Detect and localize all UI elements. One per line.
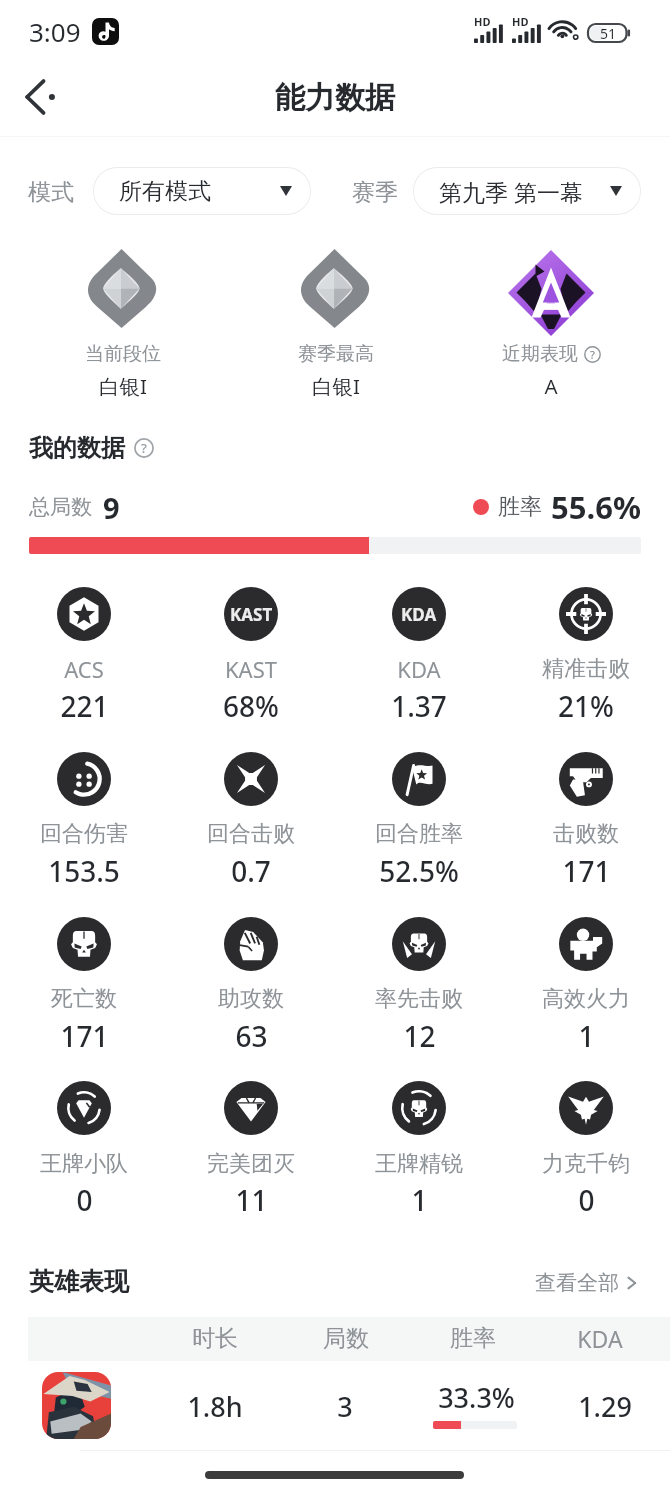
staticText: ACS (64, 654, 104, 684)
staticText: 查看全部 (535, 1270, 619, 1296)
staticText: 近期表现 (502, 342, 578, 366)
staticText: 高效火力 (542, 985, 630, 1013)
staticText: 55.6% (551, 486, 641, 528)
staticText: 1.29 (578, 1388, 632, 1425)
staticText: 153.5 (48, 852, 120, 890)
staticText: 回合击败 (207, 820, 295, 848)
staticText: 胜率 (450, 1324, 496, 1353)
staticText: 时长 (192, 1324, 238, 1353)
staticText: 当前段位 (85, 342, 161, 366)
button[interactable] (168, 907, 336, 1037)
staticText: 51 (600, 24, 617, 42)
button[interactable]: 第九季 第一幕 (413, 167, 641, 215)
staticText: 1.8h (187, 1388, 243, 1425)
staticText: 率先击败 (375, 985, 463, 1013)
staticText: KAST (225, 654, 277, 684)
staticText: 9 (103, 488, 120, 527)
staticText: ? (141, 439, 147, 457)
staticText: 11 (235, 1181, 268, 1219)
button[interactable] (335, 907, 503, 1037)
staticText: 总局数 (29, 494, 92, 520)
button[interactable] (0, 742, 168, 872)
button[interactable]: Back (12, 68, 70, 126)
staticText: 英雄表现 (29, 1266, 129, 1297)
staticText: 221 (60, 687, 109, 725)
staticText: 回合伤害 (40, 820, 128, 848)
button[interactable] (168, 742, 336, 872)
staticText: 死亡数 (51, 985, 117, 1013)
staticText: 精准击败 (542, 655, 630, 683)
staticText: 1 (578, 1017, 595, 1055)
staticText: 白银I (99, 372, 147, 400)
staticText: 0 (76, 1181, 93, 1219)
button[interactable]: 查看全部 (535, 1270, 641, 1296)
button[interactable] (168, 577, 336, 707)
staticText: 赛季最高 (298, 342, 374, 366)
staticText: 白银I (312, 372, 360, 400)
staticText: HD (512, 14, 529, 29)
staticText: KDA (397, 654, 441, 684)
button[interactable] (335, 742, 503, 872)
staticText: 能力数据 (275, 79, 395, 117)
staticText: 171 (60, 1017, 109, 1055)
staticText: 171 (562, 852, 611, 890)
button[interactable] (0, 1071, 168, 1201)
staticText: 胜率 (498, 493, 542, 521)
staticText: 21% (558, 687, 614, 725)
staticText: 12 (403, 1017, 436, 1055)
staticText: KDA (577, 1323, 623, 1354)
button[interactable] (0, 577, 168, 707)
button[interactable] (168, 1071, 336, 1201)
staticText: 3 (337, 1388, 353, 1425)
button[interactable] (503, 577, 670, 707)
staticText: 模式 (28, 178, 74, 207)
staticText: 68% (223, 687, 279, 725)
button[interactable] (335, 577, 503, 707)
staticText: 0 (578, 1181, 595, 1219)
button[interactable] (28, 1363, 670, 1451)
staticText: 赛季 (352, 178, 398, 207)
staticText: 52.5% (379, 852, 459, 890)
button[interactable] (0, 907, 168, 1037)
staticText: 力克千钧 (542, 1150, 630, 1178)
staticText: KAST (230, 603, 273, 626)
staticText: 助攻数 (218, 985, 284, 1013)
button[interactable] (335, 1071, 503, 1201)
staticText: 王牌小队 (40, 1150, 128, 1178)
staticText: 王牌精锐 (375, 1150, 463, 1178)
staticText: 1.37 (391, 687, 447, 725)
staticText: HD (474, 14, 491, 29)
staticText: 0.7 (231, 852, 271, 890)
staticText: 所有模式 (119, 177, 280, 206)
button[interactable] (503, 742, 670, 872)
staticText: A (544, 372, 558, 400)
staticText: 第九季 第一幕 (439, 176, 610, 207)
button[interactable]: 所有模式 (93, 167, 311, 215)
staticText: 回合胜率 (375, 820, 463, 848)
button[interactable] (503, 1071, 670, 1201)
staticText: ? (590, 347, 595, 362)
staticText: 完美团灭 (207, 1150, 295, 1178)
staticText: KDA (401, 603, 437, 626)
staticText: 击败数 (553, 820, 619, 848)
staticText: 3:09 (29, 14, 81, 49)
staticText: 局数 (323, 1324, 369, 1353)
staticText: 我的数据 (29, 433, 125, 463)
button[interactable] (503, 907, 670, 1037)
staticText: 63 (235, 1017, 268, 1055)
staticText: 1 (411, 1181, 428, 1219)
staticText: 33.3% (438, 1379, 515, 1416)
